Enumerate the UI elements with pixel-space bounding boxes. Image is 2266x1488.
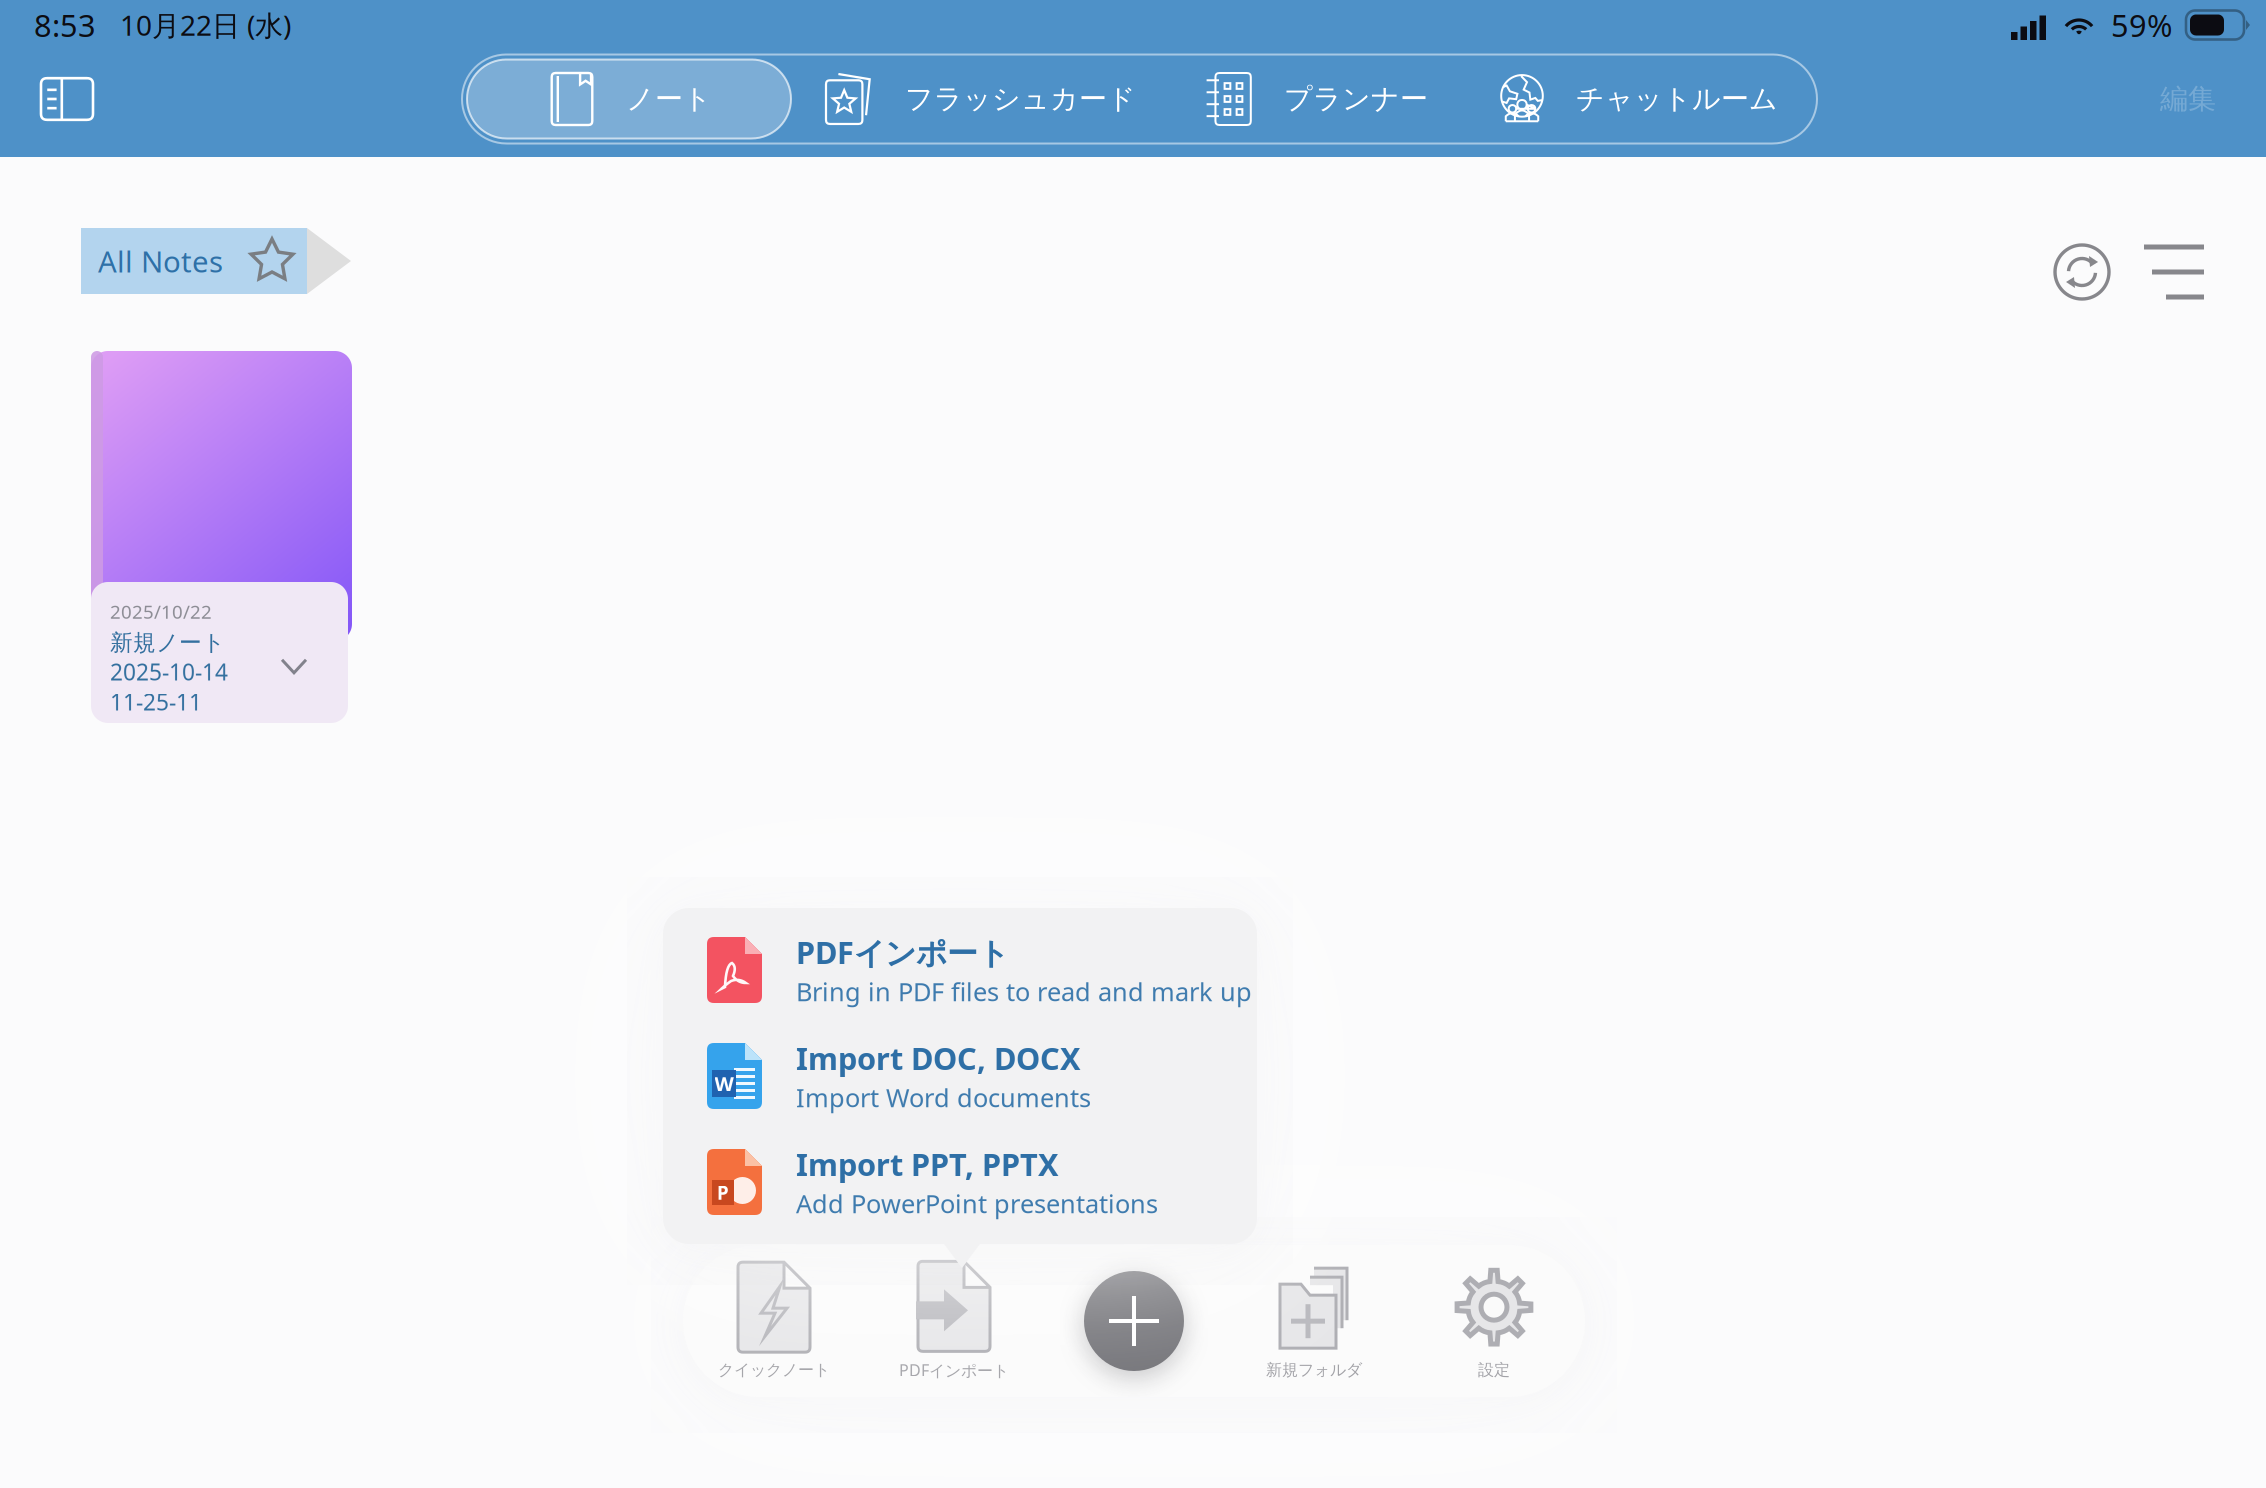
- staticText: W: [714, 1070, 733, 1097]
- button[interactable]: ノート: [467, 59, 791, 138]
- button[interactable]: P: [663, 1129, 1257, 1235]
- staticText: All Notes: [98, 241, 223, 280]
- button[interactable]: 2025/10/22: [91, 351, 352, 723]
- button[interactable]: 新規フォルダ: [1224, 1245, 1404, 1397]
- staticText: 10月22日 (水): [120, 6, 291, 44]
- staticText: フラッシュカード: [905, 82, 1136, 116]
- staticText: Bring in PDF files to read and mark up: [796, 975, 1252, 1008]
- staticText: Import Word documents: [796, 1080, 1091, 1114]
- button[interactable]: Menu: [2128, 228, 2220, 316]
- button[interactable]: フラッシュカード: [791, 59, 1170, 138]
- button[interactable]: 設定: [1404, 1245, 1584, 1397]
- staticText: プランナー: [1284, 82, 1428, 116]
- button[interactable]: PDFインポート: [864, 1245, 1044, 1397]
- button[interactable]: W: [663, 1023, 1257, 1129]
- staticText: 59%: [2111, 5, 2172, 45]
- staticText: Import DOC, DOCX: [796, 1038, 1081, 1078]
- button[interactable]: Sync: [2036, 226, 2128, 318]
- staticText: 2025/10/22: [110, 599, 212, 624]
- button[interactable]: プランナー: [1170, 59, 1462, 138]
- staticText: クイックノート: [718, 1360, 830, 1380]
- staticText: P: [717, 1180, 729, 1205]
- staticText: 新規フォルダ: [1266, 1360, 1362, 1380]
- staticText: PDFインポート: [796, 932, 1009, 973]
- staticText: ノート: [626, 82, 712, 116]
- staticText: Add PowerPoint presentations: [796, 1186, 1158, 1220]
- button[interactable]: 編集: [2136, 62, 2240, 136]
- staticText: 8:53: [34, 5, 96, 45]
- button[interactable]: Toggle sidebar: [27, 57, 107, 141]
- button[interactable]: All Notes: [81, 228, 351, 294]
- button[interactable]: PDFインポート: [663, 917, 1257, 1023]
- button[interactable]: クイックノート: [684, 1245, 864, 1397]
- staticText: Import PPT, PPTX: [796, 1144, 1059, 1184]
- staticText: PDFインポート: [899, 1359, 1009, 1381]
- staticText: チャットルーム: [1576, 82, 1778, 116]
- button[interactable]: チャットルーム: [1462, 59, 1812, 138]
- button[interactable]: New note: [1044, 1245, 1224, 1397]
- staticText: 新規ノート 2025-10-14 11-25-11: [110, 629, 228, 717]
- staticText: 編集: [2160, 82, 2216, 116]
- staticText: 設定: [1478, 1360, 1510, 1380]
